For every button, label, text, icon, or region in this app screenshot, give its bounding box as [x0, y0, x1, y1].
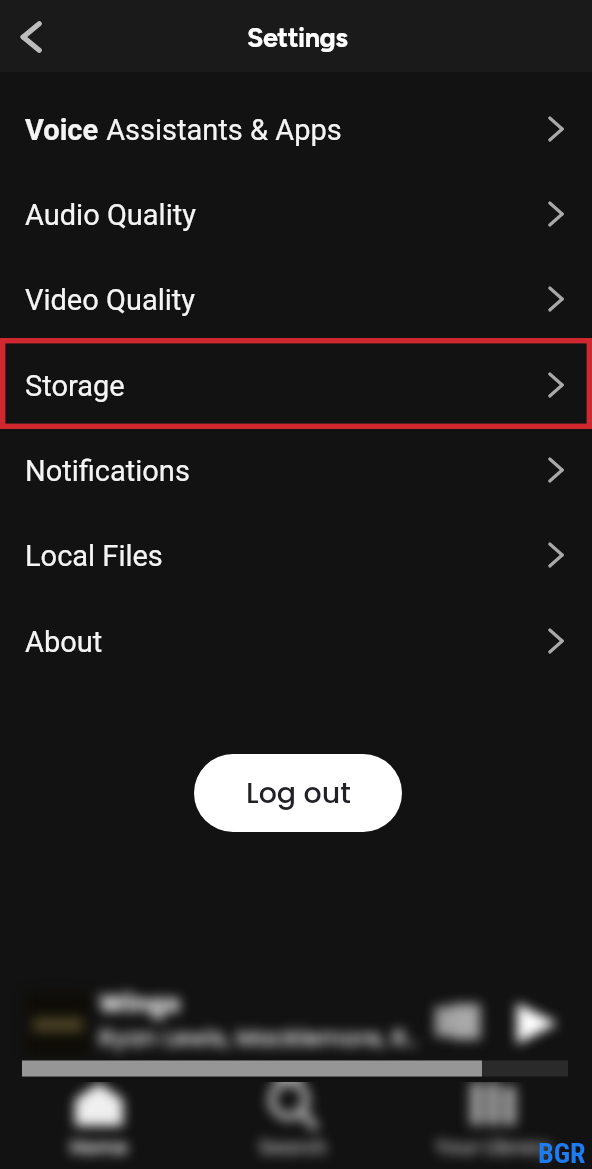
- button[interactable]: About: [0, 598, 592, 683]
- button[interactable]: Notifications: [0, 427, 592, 512]
- staticText: Local Files: [25, 539, 163, 573]
- staticText: Video Quality: [25, 283, 196, 317]
- staticText: Audio Quality: [25, 198, 196, 232]
- staticText: BGR: [538, 1137, 586, 1169]
- button[interactable]: Storage: [0, 342, 592, 427]
- button[interactable]: Connect to a device: [433, 1000, 485, 1047]
- button[interactable]: Local Files: [0, 512, 592, 597]
- button[interactable]: Log out: [194, 754, 402, 832]
- staticText: Ryan Lewis, Macklemore, R..: [99, 1022, 418, 1054]
- staticText: Settings: [247, 21, 348, 53]
- staticText: Your Library: [435, 1134, 551, 1161]
- staticText: About: [25, 625, 103, 659]
- staticText: Notifications: [25, 454, 190, 488]
- staticText: Storage: [25, 369, 125, 403]
- button[interactable]: Video Quality: [0, 256, 592, 341]
- staticText: Home: [70, 1134, 128, 1161]
- staticText: Search: [259, 1134, 327, 1161]
- button[interactable]: Home: [29, 1082, 169, 1169]
- button[interactable]: Your Library: [423, 1082, 563, 1169]
- staticText: Wings: [99, 986, 181, 1021]
- button[interactable]: Voice: [0, 86, 592, 171]
- button[interactable]: Back: [2, 8, 60, 66]
- staticText: Log out: [246, 773, 351, 813]
- staticText: Assistants & Apps: [99, 113, 342, 147]
- button[interactable]: Audio Quality: [0, 171, 592, 256]
- button[interactable]: Search: [223, 1082, 363, 1169]
- staticText: Voice: [25, 113, 99, 147]
- button[interactable]: Play: [515, 1001, 560, 1046]
